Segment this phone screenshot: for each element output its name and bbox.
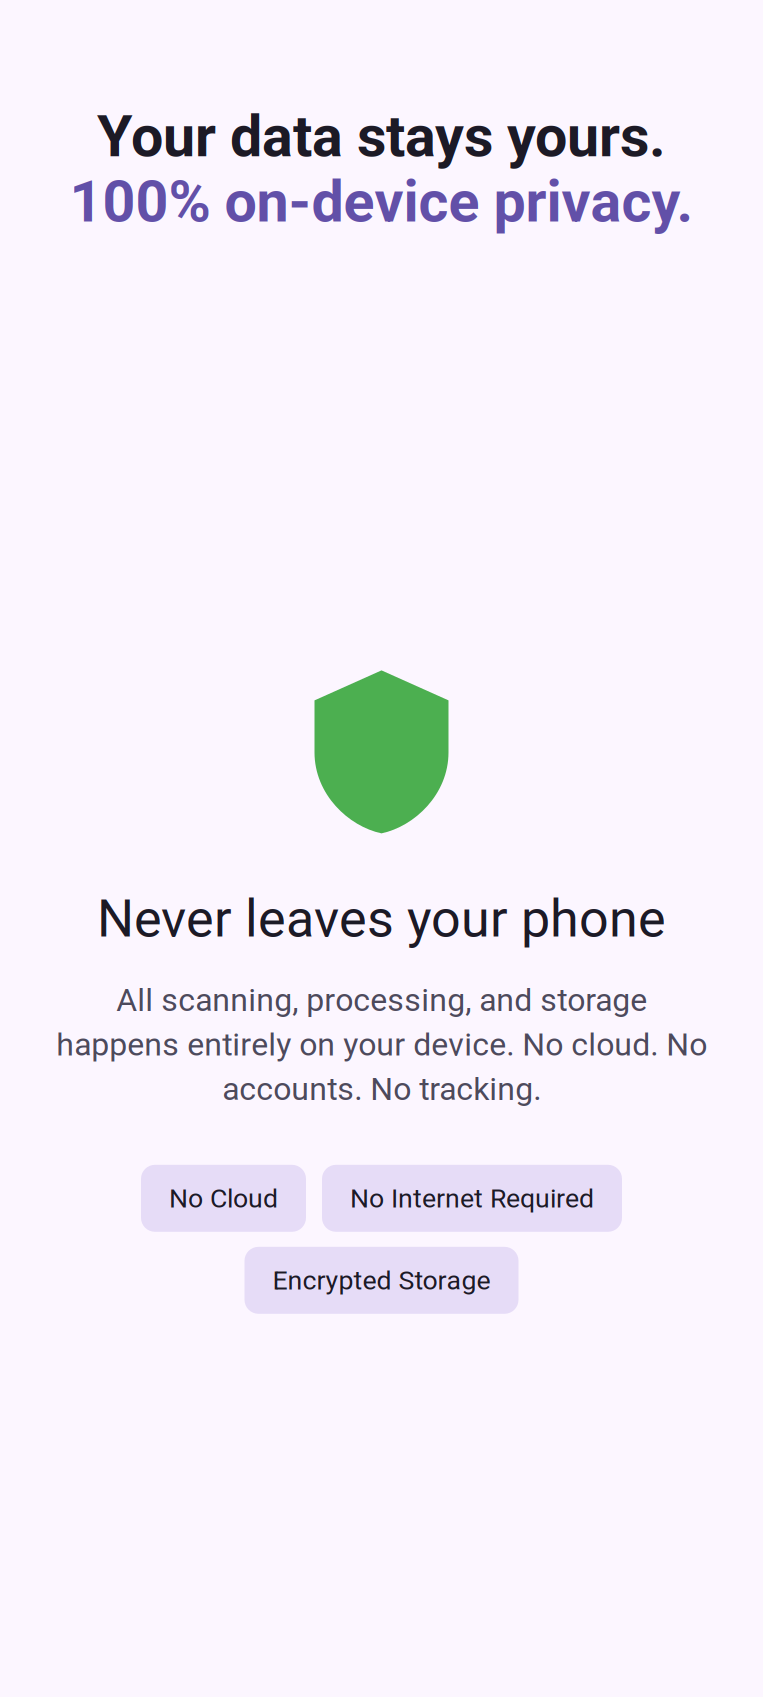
staticText: All scanning, processing, and storage ha… xyxy=(56,981,707,1108)
staticText: No Internet Required xyxy=(350,1183,594,1214)
staticText: Encrypted Storage xyxy=(272,1265,490,1296)
staticText: Never leaves your phone xyxy=(97,888,666,949)
button[interactable]: No Cloud xyxy=(141,1165,306,1232)
staticText: No Cloud xyxy=(169,1183,278,1214)
button[interactable]: No Internet Required xyxy=(322,1165,622,1232)
staticText: 100% on-device privacy. xyxy=(69,168,693,235)
staticText: Your data stays yours. xyxy=(97,103,666,170)
button[interactable]: Encrypted Storage xyxy=(244,1247,518,1314)
